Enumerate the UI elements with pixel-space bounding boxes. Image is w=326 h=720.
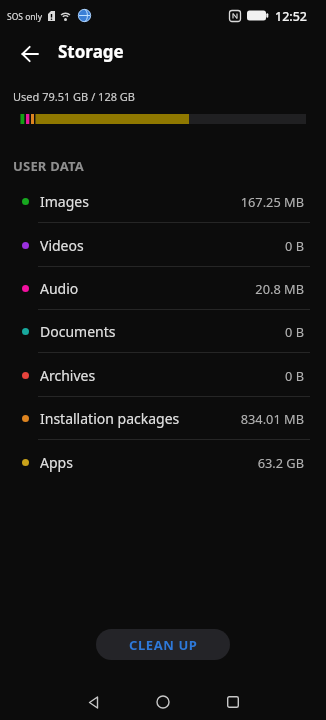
staticText: Documents (40, 322, 116, 341)
staticText: 0 B (285, 237, 304, 254)
staticText: CLEAN UP (129, 636, 198, 654)
button[interactable]: Archives (0, 354, 326, 397)
staticText: 12:52 (275, 8, 308, 25)
staticText: Archives (40, 366, 96, 385)
staticText: Installation packages (40, 409, 180, 428)
staticText: SOS only (7, 11, 43, 23)
button[interactable] (198, 684, 268, 720)
staticText: Videos (40, 236, 84, 255)
button[interactable]: Videos (0, 224, 326, 267)
staticText: Audio (40, 279, 79, 298)
staticText: Images (40, 192, 89, 211)
button[interactable]: Images (0, 180, 326, 223)
staticText: 63.2 GB (257, 454, 304, 471)
button[interactable]: CLEAN UP (96, 629, 230, 660)
staticText: Storage (58, 40, 124, 63)
staticText: 834.01 MB (240, 410, 304, 427)
button[interactable]: Audio (0, 267, 326, 310)
staticText: Used 79.51 GB / 128 GB (13, 89, 135, 104)
button[interactable]: Apps (0, 441, 326, 484)
staticText: Apps (40, 453, 73, 472)
staticText: 167.25 MB (240, 193, 304, 210)
staticText: 0 B (285, 323, 304, 340)
button[interactable] (58, 684, 128, 720)
button[interactable] (8, 41, 52, 67)
staticText: USER DATA (13, 157, 84, 175)
button[interactable]: Documents (0, 310, 326, 353)
staticText: 0 B (285, 367, 304, 384)
button[interactable]: Installation packages (0, 397, 326, 440)
button[interactable] (128, 684, 198, 720)
staticText: 20.8 MB (255, 280, 304, 297)
